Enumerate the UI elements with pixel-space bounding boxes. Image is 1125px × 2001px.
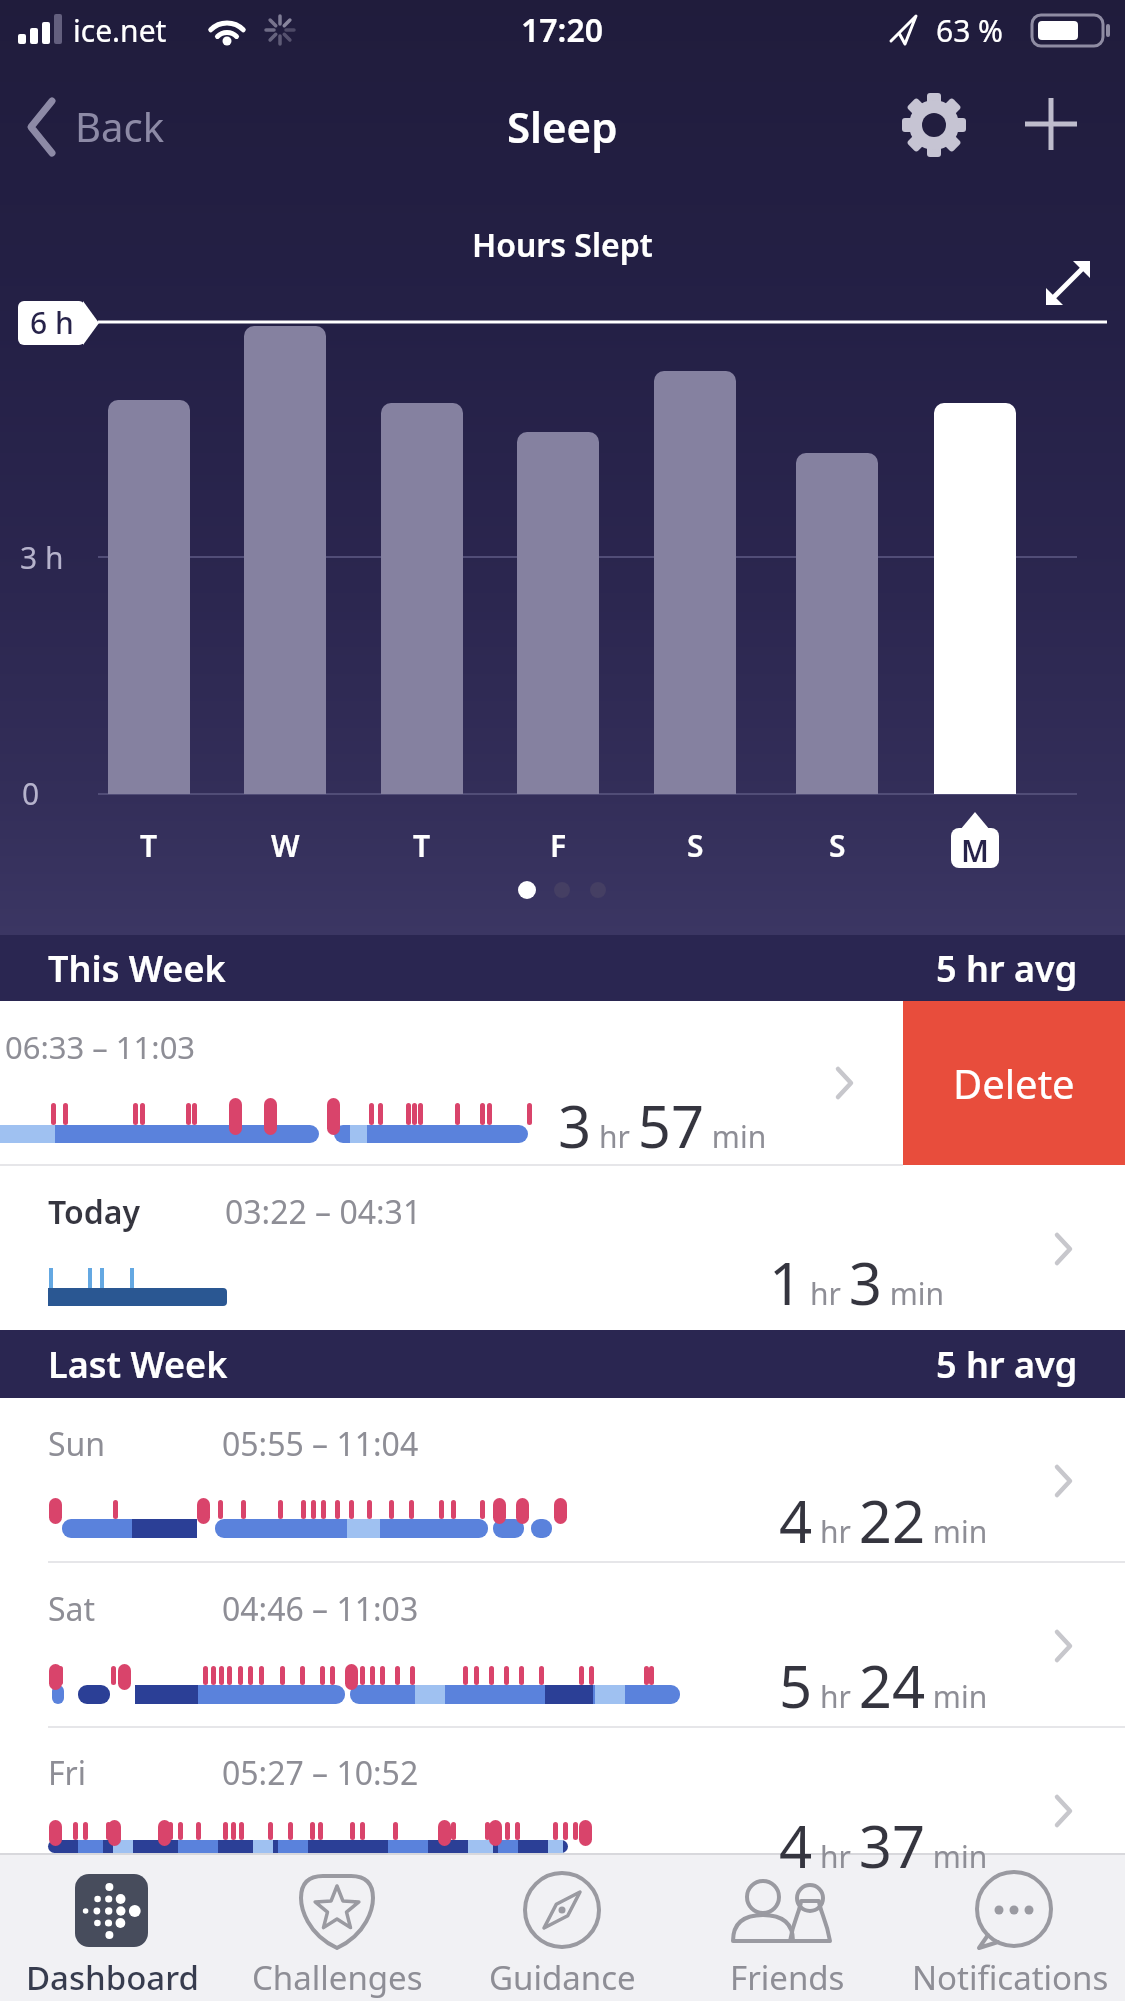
staticText: Guidance bbox=[489, 1955, 636, 2000]
staticText: F bbox=[550, 825, 567, 866]
staticText: Fri bbox=[48, 1751, 87, 1795]
button[interactable] bbox=[900, 1853, 1125, 2001]
staticText: 6 h bbox=[30, 302, 74, 343]
staticText: Challenges bbox=[252, 1955, 423, 2000]
staticText: Last Week bbox=[48, 1340, 228, 1389]
button[interactable] bbox=[0, 1001, 903, 1165]
staticText: 3 h bbox=[20, 537, 64, 578]
staticText: Sat bbox=[48, 1587, 96, 1631]
button[interactable] bbox=[0, 1853, 225, 2001]
staticText: 63 % bbox=[936, 10, 1004, 51]
staticText: W bbox=[271, 825, 300, 866]
button[interactable] bbox=[0, 1728, 1125, 1853]
staticText: Delete bbox=[953, 1056, 1075, 1110]
staticText: M bbox=[961, 830, 989, 871]
staticText: 06:33 – 11:03 bbox=[5, 1026, 196, 1068]
staticText: This Week bbox=[48, 944, 226, 993]
button[interactable] bbox=[900, 95, 970, 157]
staticText: 04:46 – 11:03 bbox=[222, 1587, 419, 1631]
staticText: Sleep bbox=[507, 98, 618, 155]
staticText: 05:27 – 10:52 bbox=[222, 1751, 419, 1795]
staticText: 3 hr 57 min bbox=[558, 1086, 767, 1165]
staticText: T bbox=[413, 825, 431, 866]
staticText: 17:20 bbox=[521, 8, 604, 52]
staticText: T bbox=[140, 825, 158, 866]
button[interactable] bbox=[1018, 95, 1084, 155]
button[interactable] bbox=[20, 90, 220, 160]
staticText: 4 hr 22 min bbox=[779, 1481, 988, 1560]
staticText: 1 hr 3 min bbox=[769, 1243, 945, 1322]
button[interactable] bbox=[225, 1853, 450, 2001]
staticText: 03:22 – 04:31 bbox=[225, 1190, 422, 1234]
button[interactable] bbox=[0, 1398, 1125, 1563]
staticText: 05:55 – 11:04 bbox=[222, 1422, 419, 1466]
staticText: Friends bbox=[730, 1955, 845, 2000]
button[interactable]: Delete bbox=[903, 1001, 1125, 1165]
button[interactable] bbox=[1035, 250, 1105, 315]
staticText: Today bbox=[48, 1190, 141, 1234]
staticText: Sun bbox=[48, 1422, 106, 1466]
staticText: 5 hr avg bbox=[936, 944, 1078, 993]
staticText: Notifications bbox=[912, 1955, 1109, 2000]
staticText: S bbox=[829, 825, 846, 866]
staticText: S bbox=[687, 825, 704, 866]
button[interactable] bbox=[450, 1853, 675, 2001]
staticText: Dashboard bbox=[26, 1955, 199, 2000]
staticText: 0 bbox=[22, 773, 40, 814]
staticText: Hours Slept bbox=[472, 223, 653, 267]
staticText: 5 hr avg bbox=[936, 1340, 1078, 1389]
staticText: Back bbox=[75, 99, 164, 153]
staticText: 4 hr 37 min bbox=[779, 1806, 988, 1885]
button[interactable] bbox=[675, 1853, 900, 2001]
button[interactable] bbox=[0, 1166, 1125, 1330]
staticText: 5 hr 24 min bbox=[779, 1646, 988, 1725]
button[interactable] bbox=[0, 1563, 1125, 1728]
staticText: ice.net bbox=[73, 10, 167, 51]
